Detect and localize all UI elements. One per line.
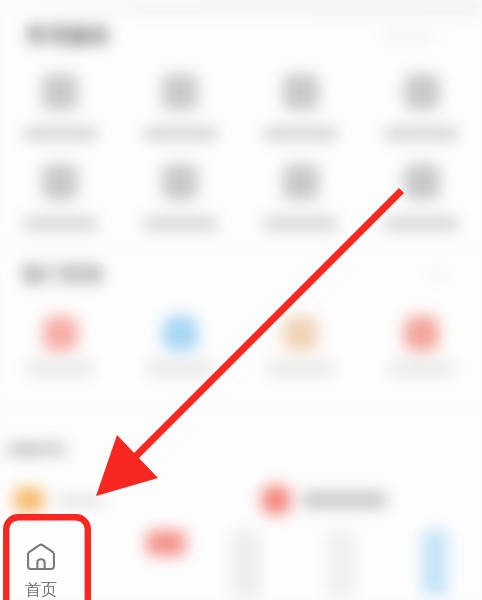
button[interactable] xyxy=(0,316,120,375)
button[interactable] xyxy=(422,530,448,596)
button[interactable] xyxy=(120,316,240,375)
button[interactable] xyxy=(0,164,120,230)
button[interactable]: 热门活动 xyxy=(22,262,102,287)
button[interactable]: Home xyxy=(3,514,91,600)
button[interactable] xyxy=(240,74,361,140)
staticText: 首页 xyxy=(25,580,57,600)
button[interactable] xyxy=(240,164,361,230)
button[interactable] xyxy=(361,74,482,140)
button[interactable] xyxy=(240,316,361,375)
button[interactable]: 常用服务 xyxy=(26,23,110,49)
button[interactable] xyxy=(361,164,482,230)
button[interactable] xyxy=(120,164,240,230)
other: Home xyxy=(27,543,55,570)
button[interactable]: 好物专区 xyxy=(7,441,67,460)
button[interactable] xyxy=(146,530,186,556)
button[interactable] xyxy=(361,316,482,375)
button[interactable] xyxy=(0,74,120,140)
button[interactable] xyxy=(120,74,240,140)
